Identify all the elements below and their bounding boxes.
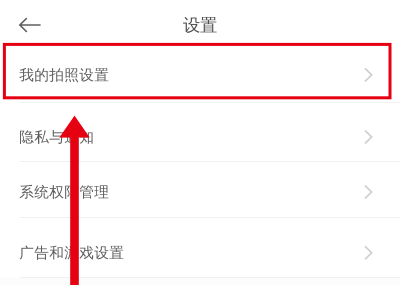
button[interactable]: 我的拍照设置 — [0, 46, 400, 103]
staticText: 设置 — [183, 15, 217, 36]
button[interactable]: 广告和游戏设置 — [0, 218, 400, 278]
staticText: 系统权限管理 — [19, 183, 109, 201]
staticText: 广告和游戏设置 — [19, 244, 124, 262]
button[interactable]: Back — [0, 0, 52, 46]
button[interactable]: 系统权限管理 — [0, 162, 400, 218]
staticText: 我的拍照设置 — [19, 66, 109, 84]
staticText: 隐私与通知 — [19, 128, 94, 146]
button[interactable]: 隐私与通知 — [0, 103, 400, 162]
